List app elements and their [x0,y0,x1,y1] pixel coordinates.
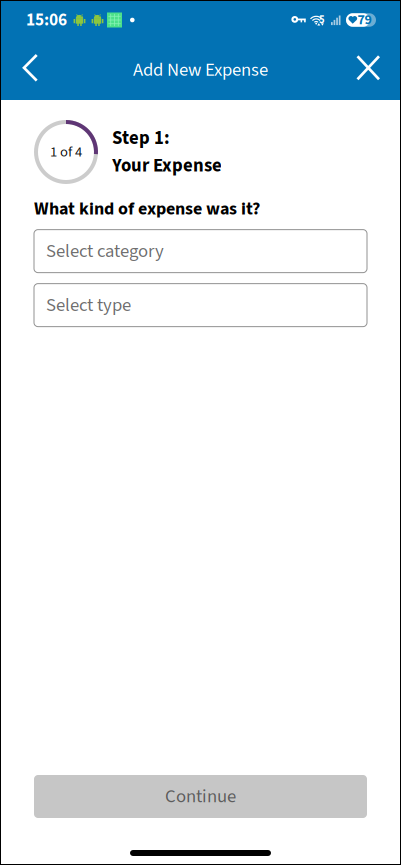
button[interactable]: Select category [34,230,367,273]
staticText: Select type [46,292,131,318]
staticText: 79 [358,10,372,30]
staticText: Continue [165,783,236,810]
staticText: Select category [46,238,164,264]
button[interactable]: Close [347,48,391,92]
staticText: 5 [319,12,325,28]
staticText: Your Expense [112,152,222,179]
staticText: 15:06 [26,8,67,32]
staticText: 1 of 4 [50,142,82,162]
staticText: What kind of expense was it? [34,196,260,222]
button[interactable]: Continue [34,775,367,818]
button[interactable]: Back [8,48,52,92]
button[interactable]: Select type [34,284,367,327]
staticText: Step 1: [112,125,170,151]
staticText: Add New Expense [133,57,268,83]
